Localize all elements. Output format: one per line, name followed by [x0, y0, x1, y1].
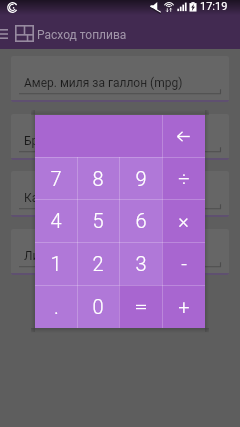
staticText: 4 [50, 209, 62, 232]
staticText: Ли [24, 249, 40, 263]
staticText: 2 [92, 252, 104, 275]
button[interactable]: 9 [119, 157, 162, 199]
staticText: Ка [24, 191, 39, 205]
button[interactable]: Ли [11, 229, 229, 275]
button[interactable]: 5 [77, 199, 119, 242]
staticText: 7 [50, 167, 62, 190]
staticText: Амер. миля за галлон (mpg) [24, 76, 183, 90]
staticText: 3 [135, 252, 147, 275]
button[interactable]: Бр [11, 114, 229, 160]
staticText: + [178, 295, 190, 318]
button[interactable]: Dashboard [14, 23, 35, 44]
button[interactable]: ÷ [162, 157, 205, 199]
button[interactable]: 0 [77, 285, 119, 328]
staticText: 5 [92, 209, 104, 232]
button[interactable]: Ка [11, 171, 229, 217]
staticText: 1 [50, 252, 62, 275]
staticText: - [181, 252, 187, 275]
button[interactable]: . [35, 285, 77, 328]
button[interactable] [119, 285, 162, 328]
staticText: 0 [92, 295, 104, 318]
button[interactable]: × [162, 199, 205, 242]
staticText: 8 [92, 167, 104, 190]
staticText: . [54, 295, 59, 318]
staticText: 6 [135, 209, 147, 232]
button[interactable]: 2 [77, 242, 119, 285]
staticText: × [178, 209, 189, 232]
button[interactable]: Navigation menu [0, 19, 14, 49]
button[interactable]: + [162, 285, 205, 328]
staticText: Расход топлива [37, 28, 127, 42]
button[interactable]: 4 [35, 199, 77, 242]
button[interactable]: 3 [119, 242, 162, 285]
button[interactable]: 6 [119, 199, 162, 242]
staticText: ÷ [178, 167, 190, 190]
button[interactable]: Backspace [162, 115, 205, 157]
button[interactable]: - [162, 242, 205, 285]
button[interactable]: 1 [35, 242, 77, 285]
staticText: 9 [135, 167, 147, 190]
staticText: 17:19 [200, 0, 228, 13]
button[interactable]: 8 [77, 157, 119, 199]
button[interactable]: Амер. миля за галлон (mpg) [11, 56, 229, 102]
staticText: Бр [24, 134, 39, 148]
button[interactable]: 7 [35, 157, 77, 199]
